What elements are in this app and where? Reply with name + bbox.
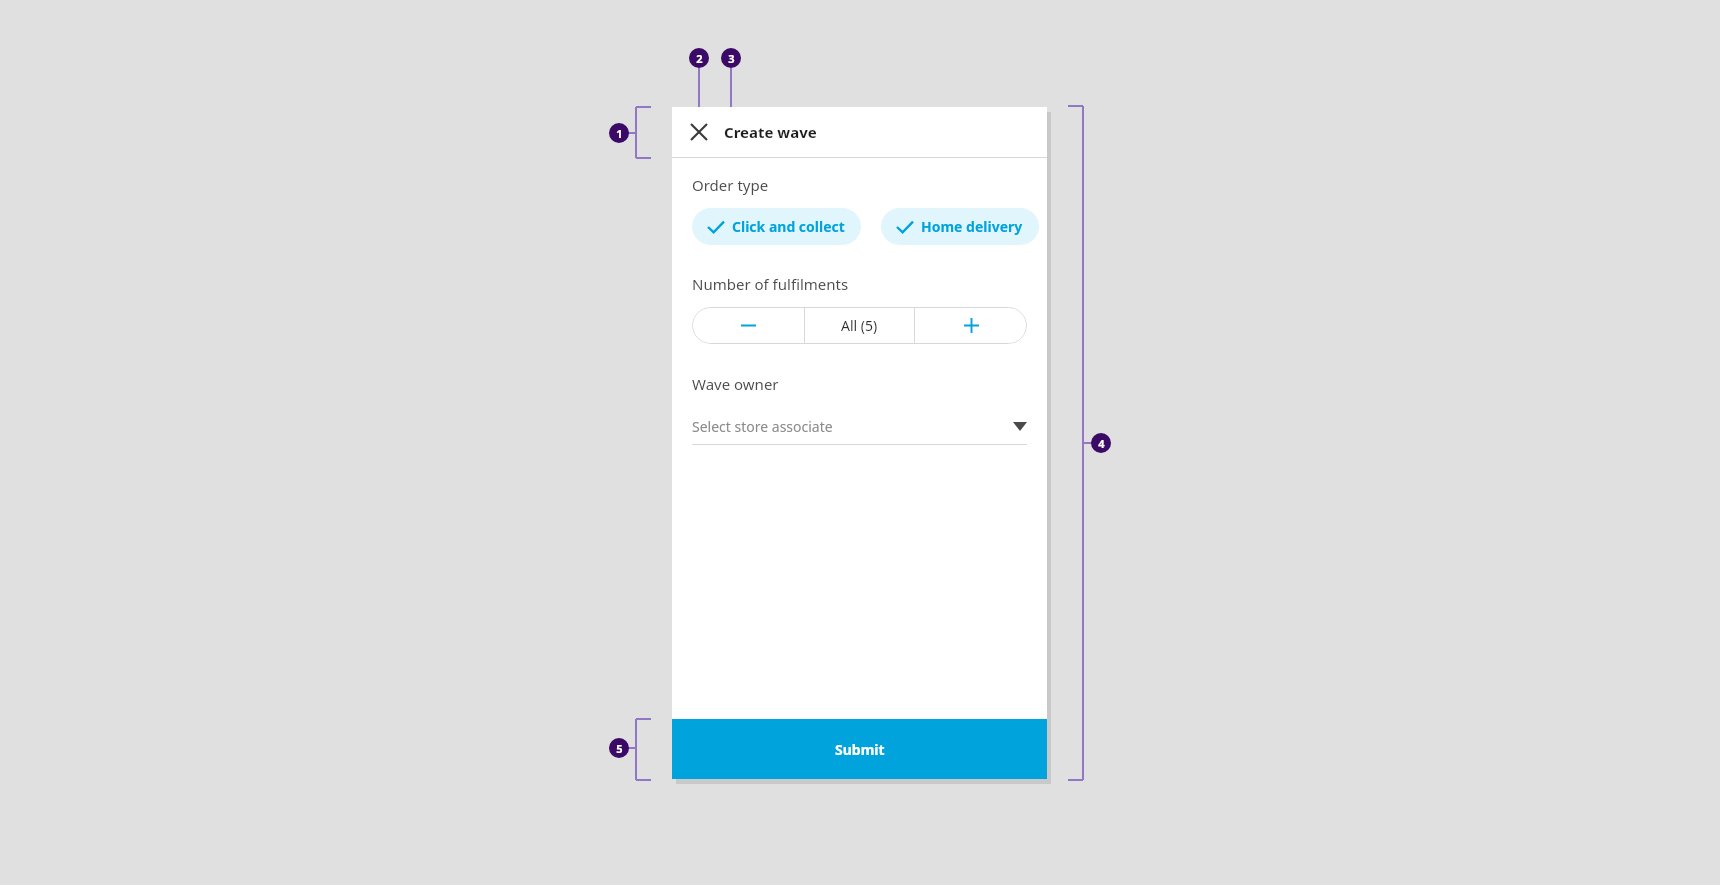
staticText: Submit [835, 740, 885, 759]
staticText: Wave owner [692, 374, 779, 394]
staticText: All (5) [841, 316, 878, 335]
staticText: Create wave [724, 122, 817, 142]
button[interactable]: Submit [672, 719, 1047, 779]
staticText: 2 [696, 51, 703, 66]
staticText: Order type [692, 175, 769, 195]
button[interactable]: Close [684, 117, 714, 147]
button[interactable]: Increase [915, 307, 1027, 344]
staticText: Number of fulfilments [692, 274, 849, 294]
button[interactable]: Decrease [692, 307, 804, 344]
staticText: 3 [728, 51, 735, 66]
button[interactable]: Select store associate [692, 413, 1027, 445]
staticText: Home delivery [921, 217, 1023, 236]
staticText: 4 [1098, 436, 1105, 451]
staticText: Select store associate [692, 417, 833, 436]
button[interactable]: Click and collect [692, 208, 861, 245]
button[interactable]: Home delivery [881, 208, 1039, 245]
button[interactable]: All (5) [805, 307, 914, 344]
staticText: 1 [616, 126, 623, 141]
staticText: Click and collect [732, 217, 845, 236]
staticText: 5 [616, 741, 623, 756]
